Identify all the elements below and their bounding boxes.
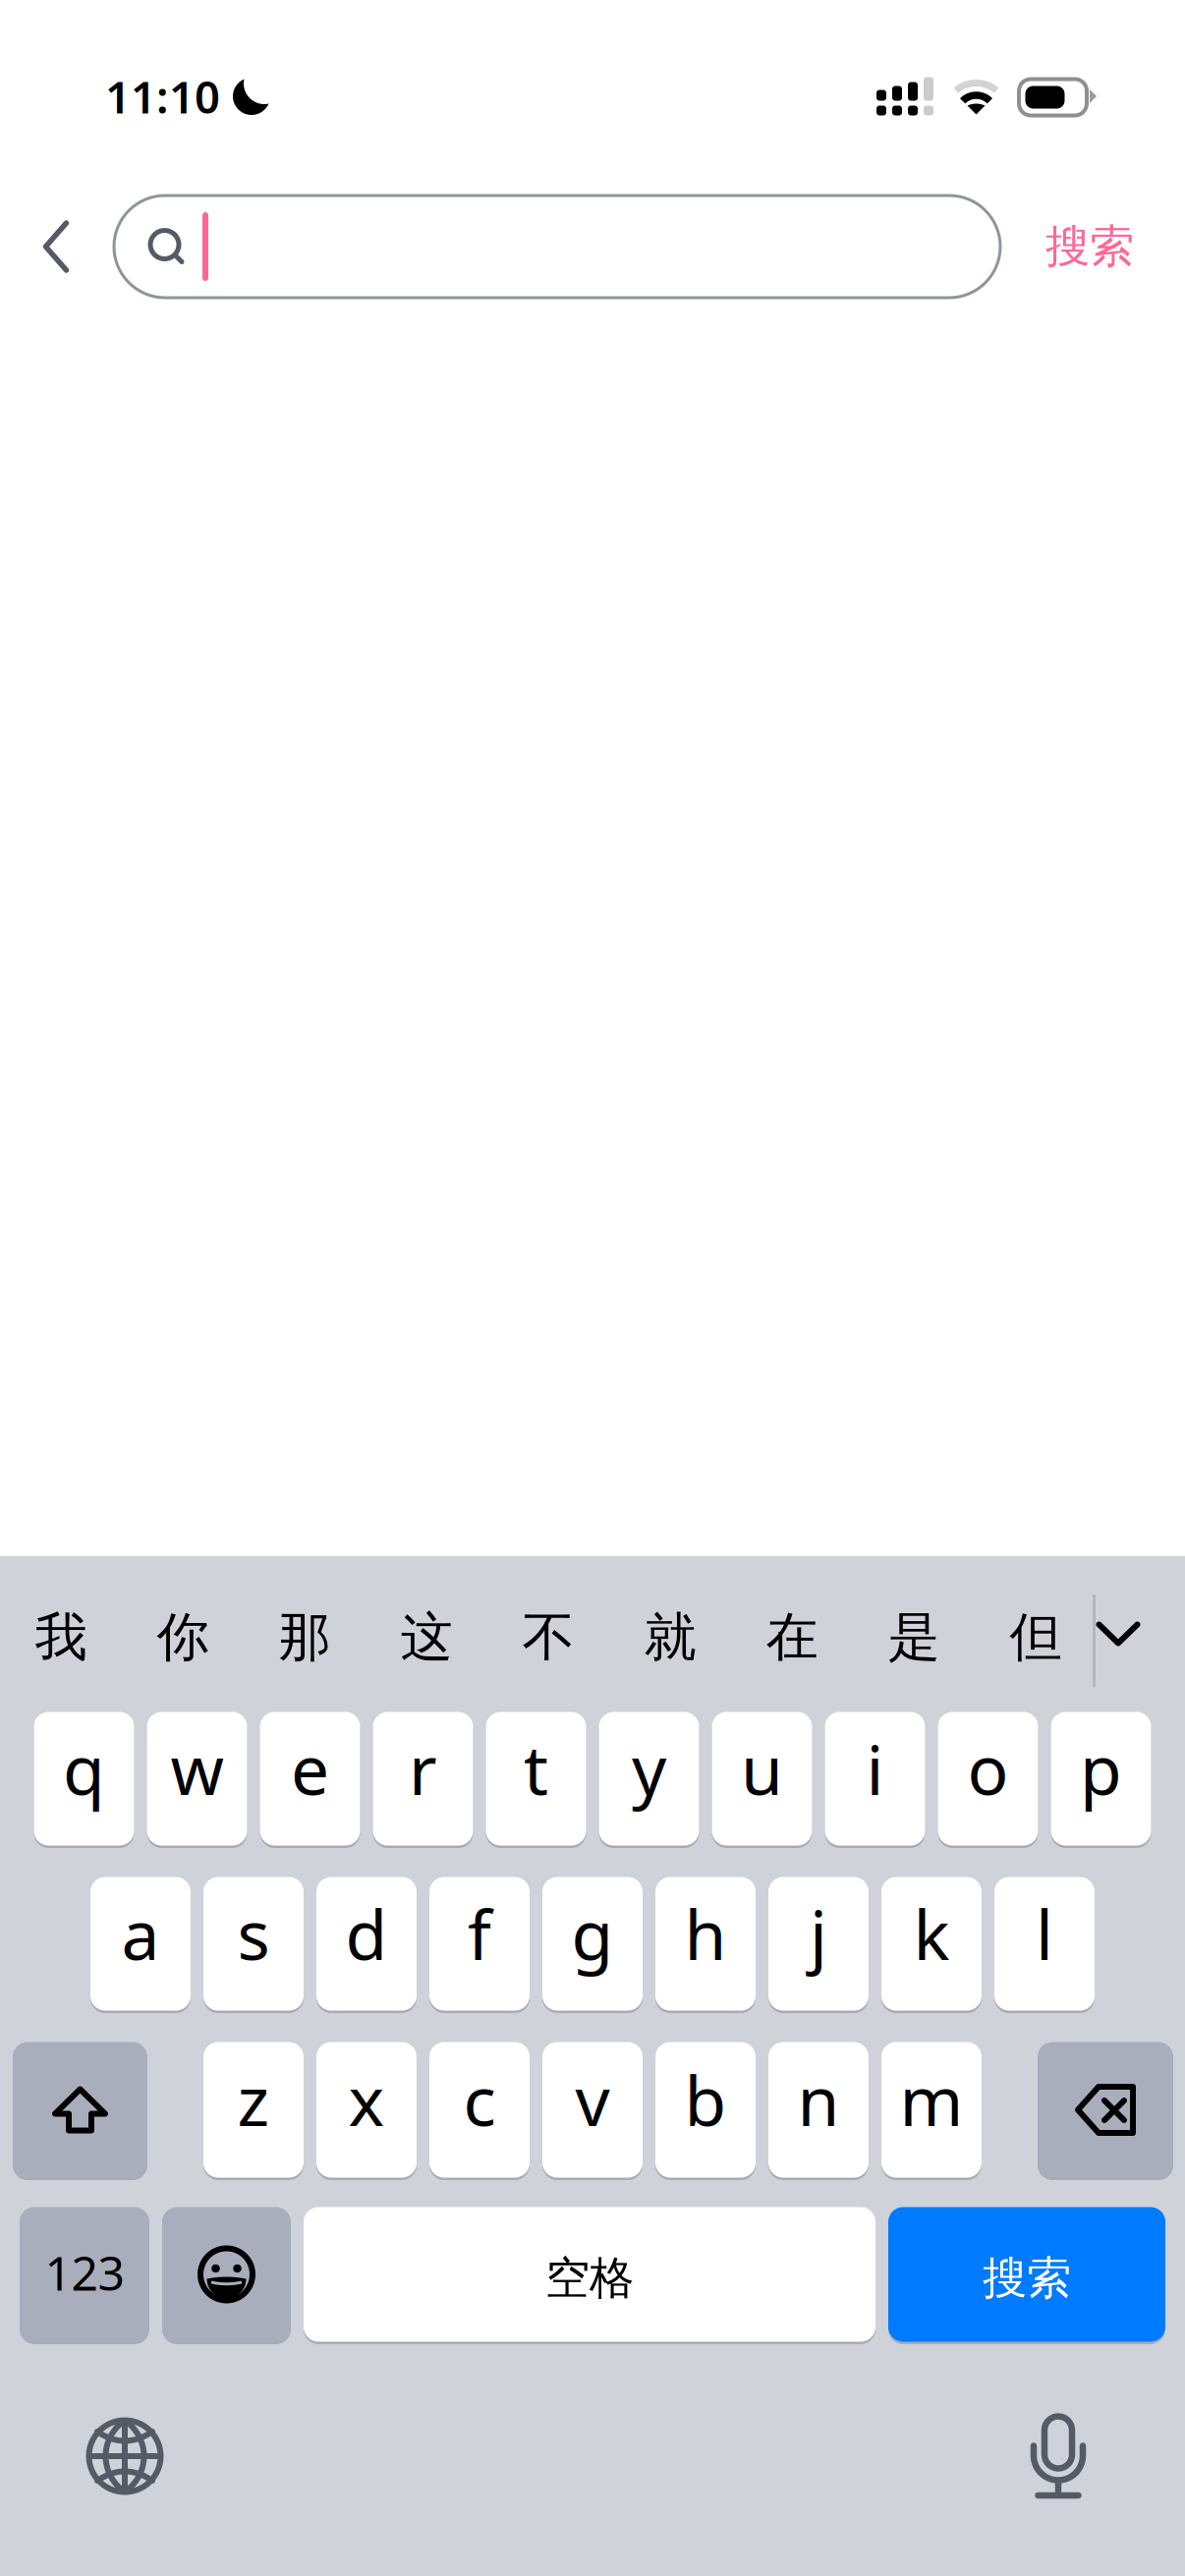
button[interactable]: x: [316, 2040, 417, 2180]
staticText: q: [63, 1723, 105, 1814]
staticText: g: [571, 1888, 614, 1979]
button[interactable]: 在: [731, 1578, 853, 1704]
button[interactable]: f: [429, 1875, 530, 2013]
button[interactable]: j: [768, 1875, 869, 2013]
button[interactable]: o: [938, 1709, 1038, 1848]
staticText: 在: [766, 1605, 818, 1669]
button[interactable]: 我: [0, 1578, 122, 1704]
staticText: 就: [644, 1605, 696, 1669]
button[interactable]: n: [768, 2040, 869, 2180]
button[interactable]: r: [373, 1709, 473, 1848]
staticText: 但: [1010, 1605, 1062, 1669]
staticText: 搜索: [1045, 219, 1134, 274]
staticText: h: [684, 1888, 727, 1979]
staticText: 123: [45, 2241, 124, 2304]
button[interactable]: h: [655, 1875, 756, 2013]
staticText: c: [463, 2054, 496, 2145]
button[interactable]: y: [599, 1709, 699, 1848]
staticText: d: [345, 1888, 388, 1979]
staticText: f: [468, 1888, 491, 1979]
button[interactable]: [114, 196, 1000, 298]
button[interactable]: 这: [366, 1578, 487, 1704]
staticText: w: [170, 1723, 224, 1814]
staticText: 你: [157, 1605, 209, 1669]
staticText: t: [524, 1723, 548, 1814]
button[interactable]: 空格: [304, 2205, 875, 2344]
button[interactable]: m: [881, 2040, 982, 2180]
button[interactable]: q: [34, 1709, 134, 1848]
staticText: l: [1036, 1888, 1053, 1979]
button[interactable]: a: [90, 1875, 191, 2013]
staticText: p: [1080, 1723, 1122, 1814]
staticText: e: [291, 1723, 329, 1814]
staticText: b: [684, 2054, 727, 2145]
button[interactable]: d: [316, 1875, 417, 2013]
staticText: 那: [279, 1605, 331, 1669]
button[interactable]: c: [429, 2040, 530, 2180]
button[interactable]: u: [712, 1709, 812, 1848]
button[interactable]: g: [542, 1875, 643, 2013]
staticText: y: [632, 1723, 666, 1814]
staticText: n: [797, 2054, 840, 2145]
button[interactable]: 是: [853, 1578, 975, 1704]
button[interactable]: s: [203, 1875, 304, 2013]
button[interactable]: Back: [43, 196, 69, 298]
button[interactable]: 123: [20, 2205, 149, 2344]
staticText: o: [967, 1723, 1009, 1814]
button[interactable]: Shift: [13, 2040, 147, 2180]
button[interactable]: w: [147, 1709, 247, 1848]
button[interactable]: Delete: [1038, 2040, 1173, 2180]
staticText: j: [810, 1888, 827, 1979]
button[interactable]: Switch keyboard: [46, 2399, 203, 2513]
staticText: a: [121, 1888, 160, 1979]
button[interactable]: i: [825, 1709, 925, 1848]
button[interactable]: k: [881, 1875, 982, 2013]
staticText: k: [913, 1888, 950, 1979]
button[interactable]: 搜索: [1045, 196, 1134, 298]
staticText: i: [866, 1723, 884, 1814]
button[interactable]: Hide candidates: [1096, 1578, 1141, 1704]
staticText: 是: [888, 1605, 940, 1669]
button[interactable]: e: [260, 1709, 360, 1848]
button[interactable]: 就: [609, 1578, 731, 1704]
button[interactable]: 但: [975, 1578, 1097, 1704]
staticText: x: [348, 2054, 385, 2145]
button[interactable]: 搜索: [888, 2205, 1165, 2344]
button[interactable]: 不: [487, 1578, 609, 1704]
button[interactable]: t: [486, 1709, 586, 1848]
staticText: m: [900, 2054, 963, 2145]
staticText: 这: [400, 1605, 452, 1669]
staticText: 11:10: [105, 67, 220, 126]
button[interactable]: l: [994, 1875, 1095, 2013]
staticText: 空格: [545, 2251, 634, 2306]
button[interactable]: 你: [122, 1578, 244, 1704]
button[interactable]: p: [1051, 1709, 1151, 1848]
button[interactable]: z: [203, 2040, 304, 2180]
staticText: u: [741, 1723, 783, 1814]
staticText: z: [237, 2054, 270, 2145]
button[interactable]: 那: [244, 1578, 366, 1704]
staticText: s: [237, 1888, 270, 1979]
staticText: v: [575, 2054, 610, 2145]
staticText: 搜索: [983, 2251, 1071, 2306]
staticText: 不: [522, 1605, 574, 1669]
staticText: r: [409, 1723, 437, 1814]
button[interactable]: v: [542, 2040, 643, 2180]
button[interactable]: Dictation: [980, 2399, 1137, 2513]
button[interactable]: b: [655, 2040, 756, 2180]
button[interactable]: Emoji: [162, 2205, 291, 2344]
staticText: 我: [35, 1605, 87, 1669]
